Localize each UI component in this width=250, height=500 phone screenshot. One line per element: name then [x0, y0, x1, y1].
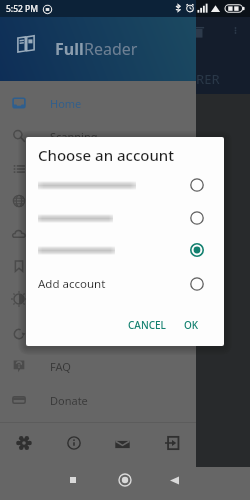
button[interactable]: Recents	[61, 468, 85, 492]
staticText: Add account	[38, 276, 106, 292]
button[interactable]: Home	[0, 87, 196, 119]
staticText: OK	[184, 318, 199, 332]
button[interactable]	[26, 204, 224, 232]
button[interactable]: Bookmarks	[0, 250, 196, 282]
button[interactable]: Add account	[26, 270, 224, 298]
button[interactable]: OK	[178, 314, 205, 336]
button[interactable]: Themes	[0, 283, 196, 315]
staticText: Reader	[84, 38, 138, 60]
button[interactable]: Settings	[10, 429, 38, 457]
staticText: Choose an account	[38, 145, 174, 165]
button[interactable]: About	[60, 429, 88, 457]
staticText: Synchronization	[50, 327, 133, 342]
button[interactable]: CANCEL	[122, 314, 172, 336]
staticText: CANCEL	[128, 318, 166, 332]
button[interactable]: Feedback	[108, 430, 136, 458]
button[interactable]: Home	[113, 468, 137, 492]
staticText: Donate	[50, 393, 88, 408]
button[interactable]: FAQ	[0, 350, 196, 382]
button[interactable]: Donate	[0, 384, 196, 416]
button[interactable]: My library	[0, 153, 196, 185]
staticText: RER	[196, 70, 220, 88]
button[interactable]	[26, 236, 224, 264]
button[interactable]: Online library	[0, 185, 196, 217]
button[interactable]: Scanning	[0, 120, 196, 152]
button[interactable]: Delete	[191, 25, 205, 39]
staticText: Scanning	[50, 129, 98, 144]
button[interactable]: More options	[231, 26, 240, 35]
button[interactable]: Cloud storage	[0, 218, 196, 250]
staticText: Full	[55, 38, 84, 60]
button[interactable]	[26, 171, 224, 199]
button[interactable]: Exit	[158, 429, 186, 457]
staticText: 5:52 PM	[6, 3, 39, 15]
button[interactable]: Synchronization	[0, 318, 196, 350]
button[interactable]: Back	[162, 468, 186, 492]
staticText: FAQ	[50, 359, 71, 374]
staticText: Home	[50, 96, 82, 111]
